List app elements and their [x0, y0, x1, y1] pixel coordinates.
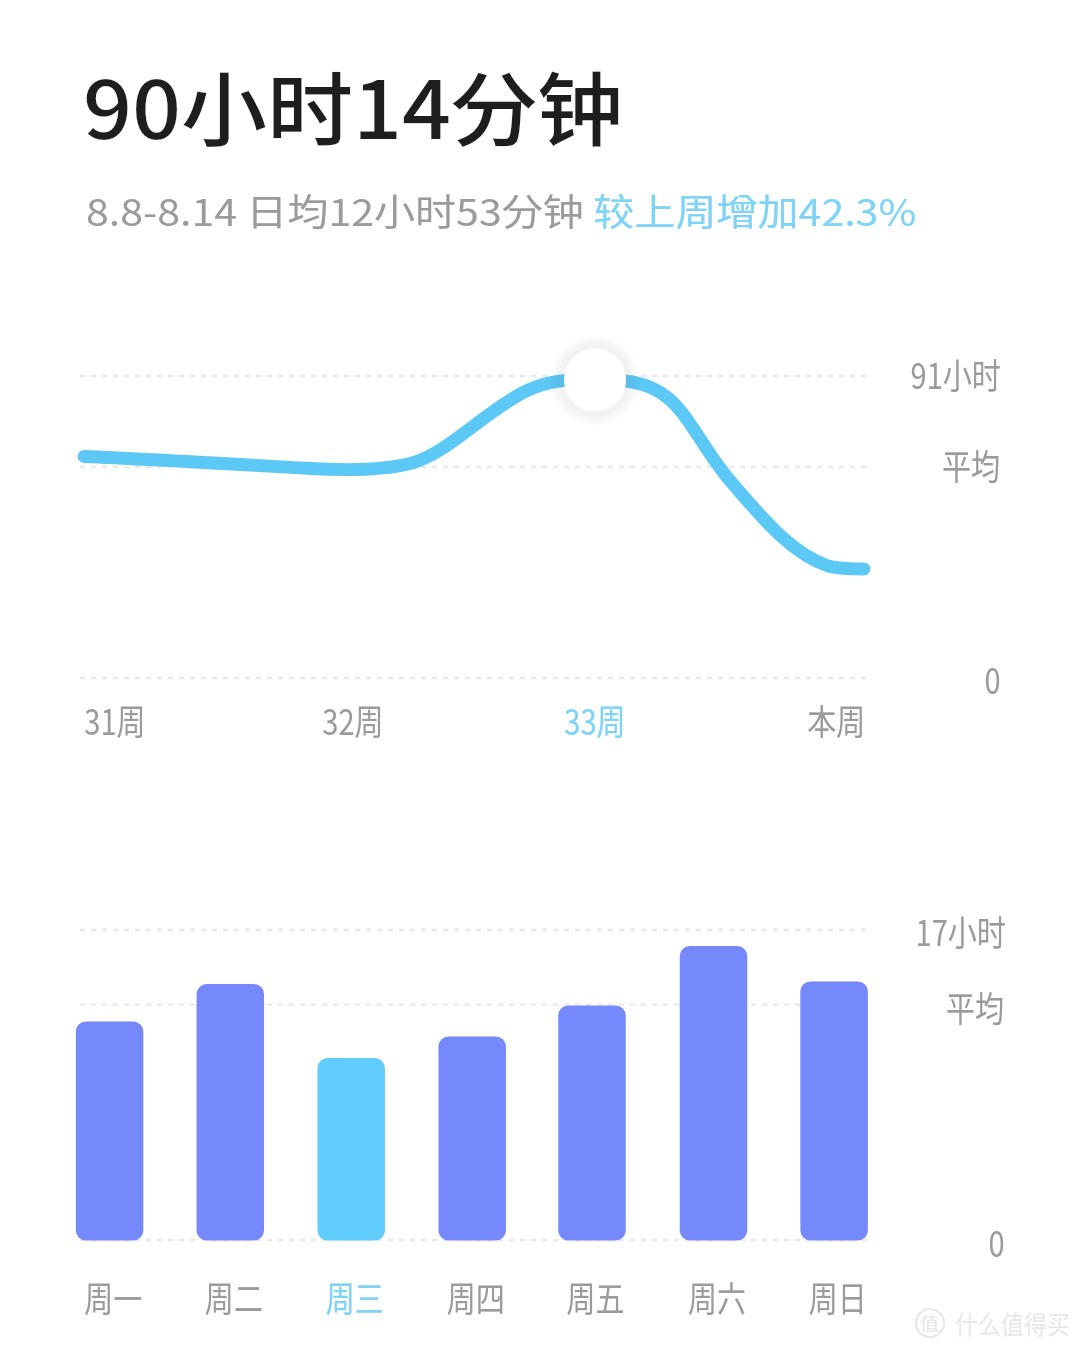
- button[interactable]: 周五: [534, 920, 650, 1320]
- button[interactable]: 周二: [172, 920, 288, 1320]
- button[interactable]: 33周: [515, 688, 675, 752]
- button[interactable]: 周日: [776, 920, 892, 1320]
- button[interactable]: 31周: [35, 688, 195, 752]
- button[interactable]: 本周: [757, 688, 917, 752]
- button[interactable]: 32周: [273, 688, 433, 752]
- button[interactable]: 周三: [293, 920, 409, 1320]
- button[interactable]: 周一: [52, 920, 168, 1320]
- button[interactable]: 周四: [414, 920, 530, 1320]
- button[interactable]: 周六: [656, 920, 772, 1320]
